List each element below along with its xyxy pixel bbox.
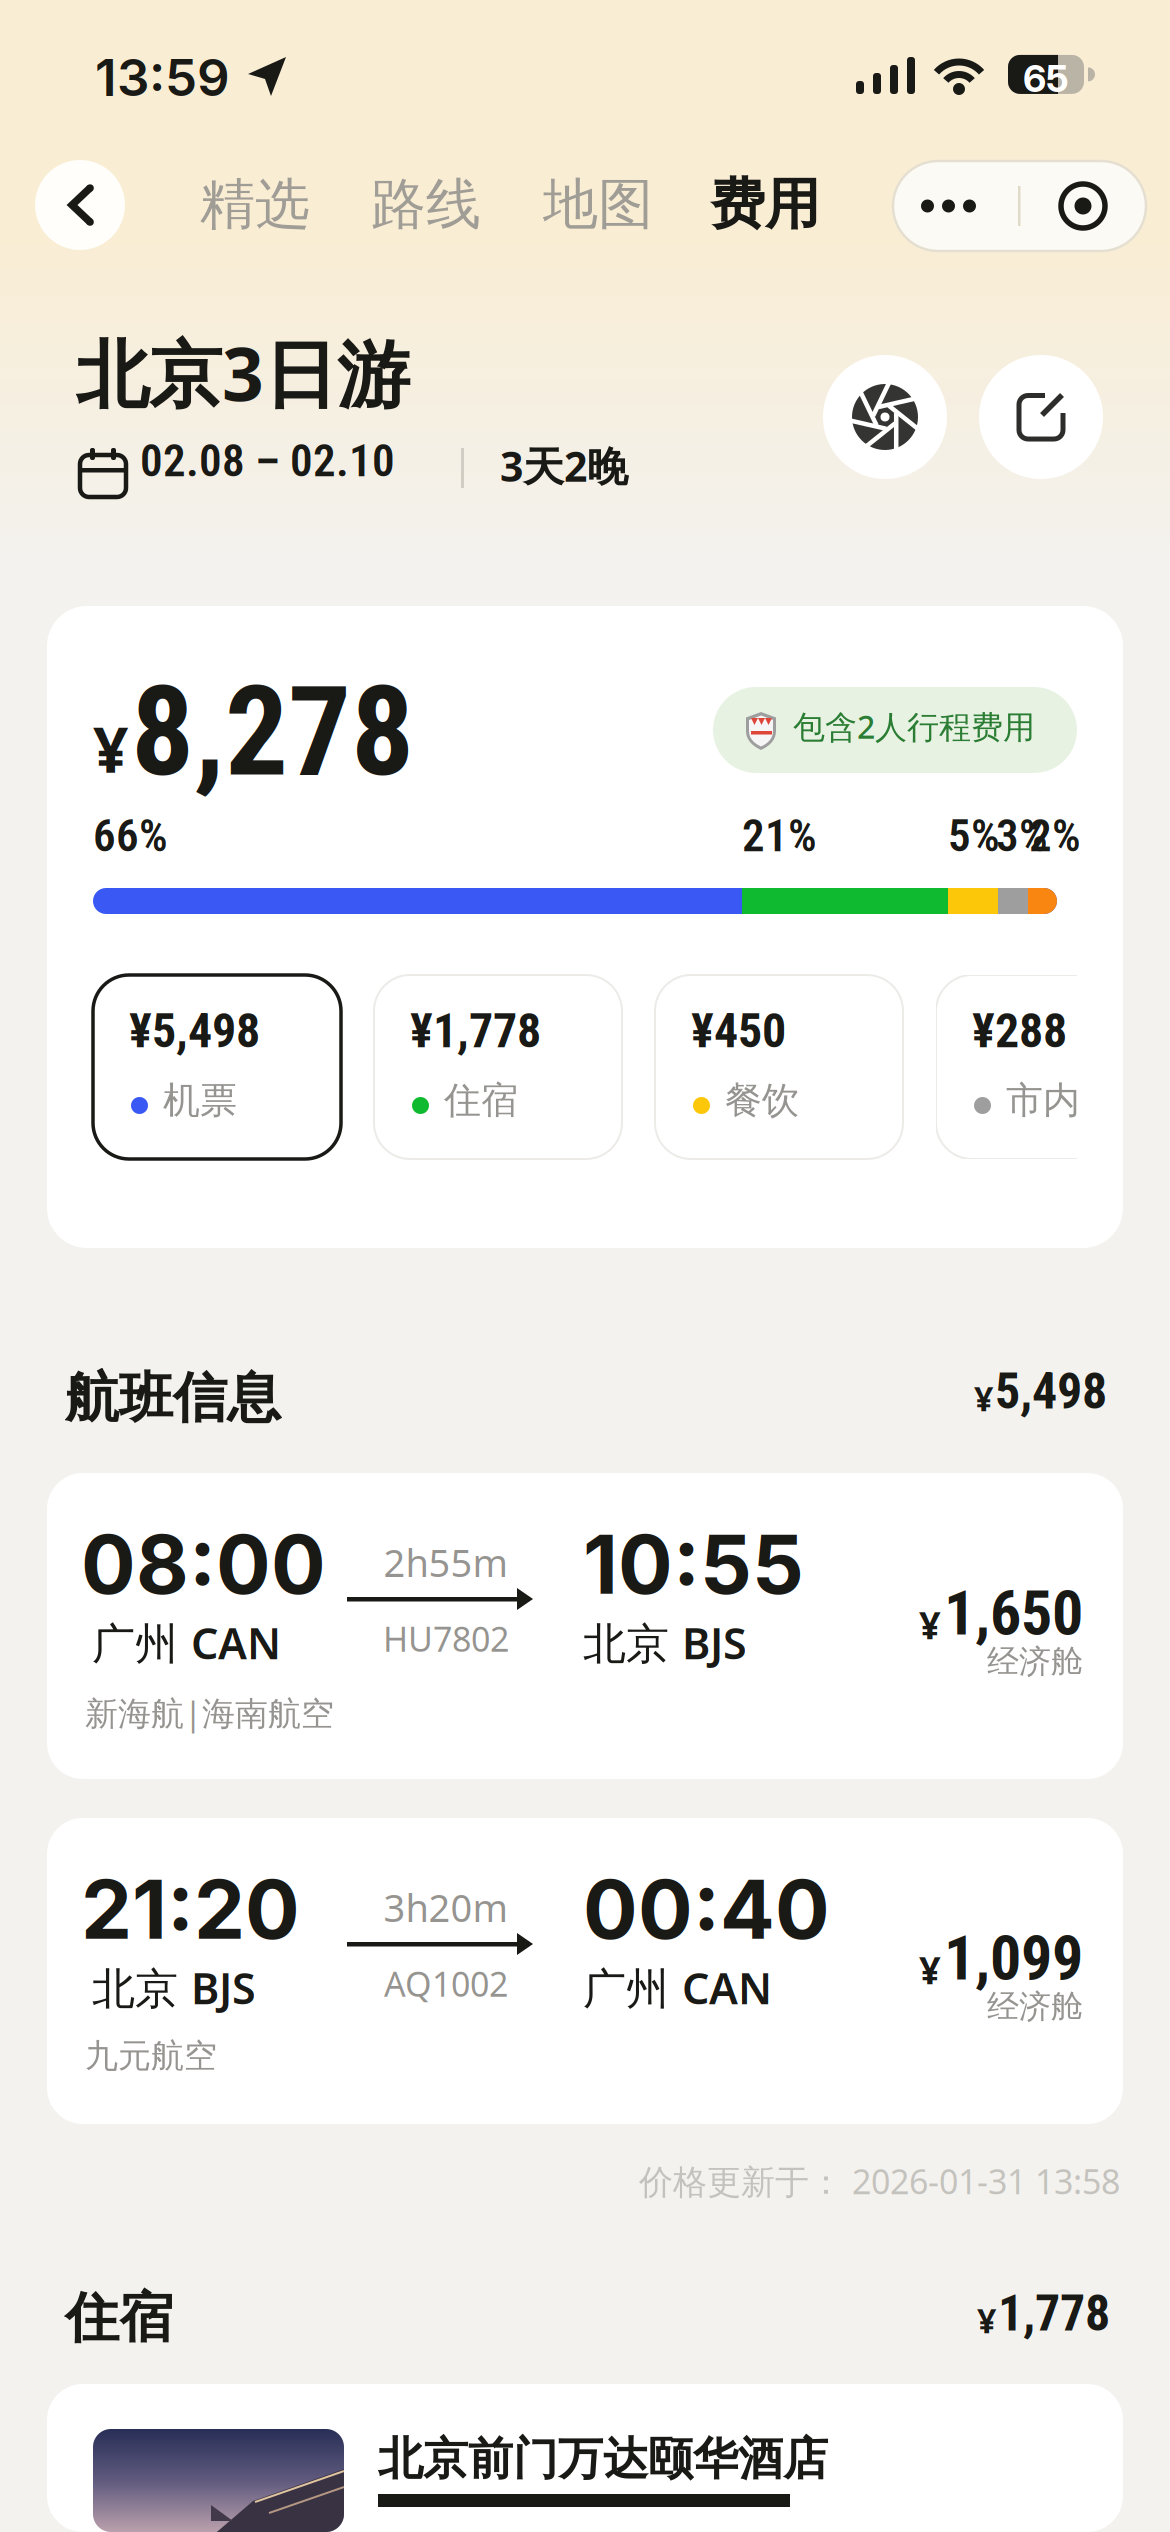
staticText: HU7802 xyxy=(383,1616,509,1661)
staticText: 5% xyxy=(948,809,1000,862)
staticText: 3h20m xyxy=(383,1882,508,1932)
staticText: 1,778 xyxy=(998,2284,1110,2343)
staticText: 新海航|海南航空 xyxy=(85,1691,334,1735)
staticText: AQ1002 xyxy=(384,1961,508,2006)
staticText: 机票 xyxy=(163,1078,237,1123)
staticText: 10:55 xyxy=(583,1515,804,1613)
staticText: 00:40 xyxy=(583,1860,830,1958)
staticText: 13:59 xyxy=(95,47,230,108)
staticText: 价格更新于： 2026-01-31 13:58 xyxy=(639,2158,1120,2204)
staticText: 路线 xyxy=(371,171,481,238)
staticText: ¥ xyxy=(977,2297,996,2343)
staticText: 九元航空 xyxy=(85,2036,217,2076)
staticText: 广州 CAN xyxy=(583,1959,772,2016)
staticText: 北京前门万达颐华酒店 xyxy=(378,2431,828,2487)
staticText: ¥ xyxy=(93,707,128,790)
staticText: 08:00 xyxy=(81,1515,326,1613)
staticText: 精选 xyxy=(200,171,310,238)
staticText: 3% xyxy=(996,809,1048,862)
staticText: ¥ xyxy=(919,1944,941,1995)
staticText: 餐饮 xyxy=(725,1078,799,1123)
staticText: 广州 CAN xyxy=(92,1614,281,1671)
staticText: 2% xyxy=(1029,809,1081,862)
staticText: ¥ xyxy=(974,1375,993,1421)
staticText: 市内交通 xyxy=(1006,1078,1154,1123)
staticText: 02.08 – 02.10 xyxy=(140,434,395,487)
staticText: 经济舱 xyxy=(987,1642,1083,1681)
staticText: 经济舱 xyxy=(987,1987,1083,2026)
staticText: 费用 xyxy=(710,171,820,238)
staticText: 65 xyxy=(1023,56,1069,101)
staticText: 1,650 xyxy=(944,1577,1083,1650)
staticText: 21% xyxy=(742,809,817,862)
staticText: ¥5,498 xyxy=(129,1003,260,1059)
staticText: 5,498 xyxy=(995,1362,1107,1421)
staticText: 3天2晚 xyxy=(500,438,628,493)
staticText: 8,278 xyxy=(131,658,414,805)
staticText: ¥450 xyxy=(691,1003,786,1059)
staticText: 航班信息 xyxy=(65,1365,281,1431)
staticText: 住宿 xyxy=(444,1078,518,1123)
staticText: 66% xyxy=(93,809,168,862)
staticText: 1,099 xyxy=(944,1922,1083,1995)
staticText: 2h55m xyxy=(383,1537,508,1587)
staticText: ¥288 xyxy=(972,1003,1067,1059)
staticText: 21:20 xyxy=(81,1860,300,1958)
staticText: 北京3日游 xyxy=(76,325,410,421)
staticText: 北京 BJS xyxy=(583,1614,747,1671)
staticText: ¥ xyxy=(919,1599,941,1650)
staticText: 地图 xyxy=(543,171,653,238)
staticText: ¥1,778 xyxy=(410,1003,541,1059)
staticText: 住宿 xyxy=(65,2285,173,2351)
staticText: 包含2人行程费用 xyxy=(793,705,1035,747)
staticText: 北京 BJS xyxy=(92,1959,256,2016)
